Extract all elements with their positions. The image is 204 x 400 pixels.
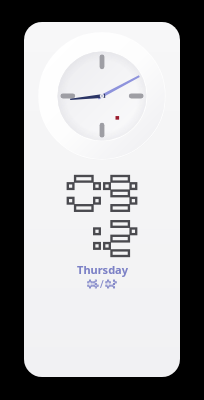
button[interactable]: Analog clock, 9:12 <box>24 22 180 377</box>
button[interactable]: Digital time 09:12 <box>62 176 142 256</box>
button[interactable]: Thursday <box>47 262 157 288</box>
button[interactable]: Analog clock, 9:12 <box>38 32 166 160</box>
staticText: Thursday <box>77 262 128 277</box>
